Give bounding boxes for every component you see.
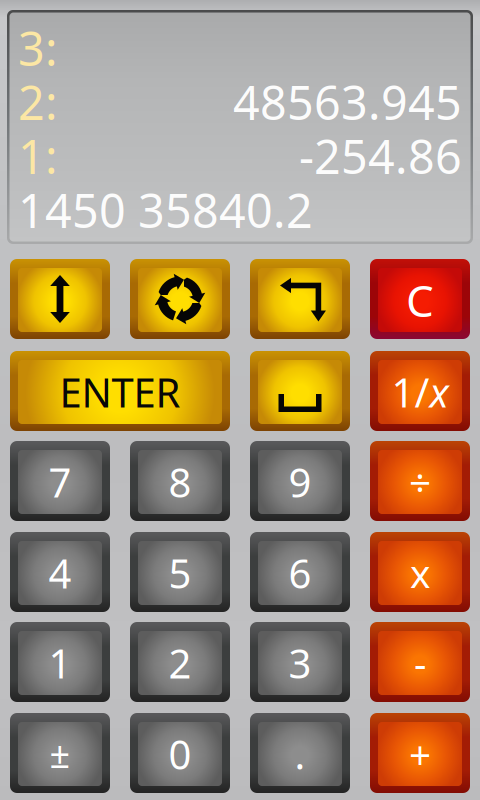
staticText: 1/ [391,365,429,418]
button[interactable]: Drop [250,259,350,339]
button[interactable]: Reciprocal [370,351,470,431]
button[interactable]: C [370,259,470,339]
staticText: ENTER [59,365,180,418]
button[interactable]: 7 [10,441,110,521]
button[interactable]: 0 [130,713,230,793]
button[interactable]: 3 [250,622,350,702]
button[interactable]: 5 [130,532,230,612]
button[interactable]: . [250,713,350,793]
staticText: 8 [168,455,191,508]
button[interactable]: ENTER [10,351,230,431]
staticText: 3: [18,17,58,79]
button[interactable]: ÷ [370,441,470,521]
staticText: . [294,727,305,780]
button[interactable]: 1 [10,622,110,702]
staticText: 1450 35840.2 [18,179,313,241]
button[interactable]: 2 [130,622,230,702]
staticText: x [410,547,430,599]
staticText: 0 [168,727,191,780]
staticText: ÷ [409,456,431,508]
staticText: 2: [18,71,58,133]
staticText: 6 [288,546,311,599]
staticText: - [414,637,426,689]
staticText: 9 [288,455,311,508]
staticText: ± [49,730,70,778]
button[interactable]: - [370,622,470,702]
button[interactable]: 6 [250,532,350,612]
staticText: x [429,365,448,418]
staticText: + [409,728,431,780]
button[interactable]: 4 [10,532,110,612]
staticText: 1 [48,636,71,689]
staticText: 4 [48,546,71,599]
staticText: 48563.945 [233,71,462,133]
staticText: C [406,271,434,329]
button[interactable]: 8 [130,441,230,521]
staticText: 3 [288,636,311,689]
button[interactable]: 9 [250,441,350,521]
staticText: 7 [48,455,71,508]
staticText: 2 [168,636,191,689]
button[interactable]: x [370,532,470,612]
staticText: -254.86 [299,125,462,187]
staticText: 5 [168,546,191,599]
staticText: 1: [18,125,58,187]
button[interactable]: Swap X and Y [10,259,110,339]
button[interactable]: Roll stack [130,259,230,339]
button[interactable]: Space [250,351,350,431]
button[interactable]: + [370,713,470,793]
button[interactable]: ± [10,713,110,793]
